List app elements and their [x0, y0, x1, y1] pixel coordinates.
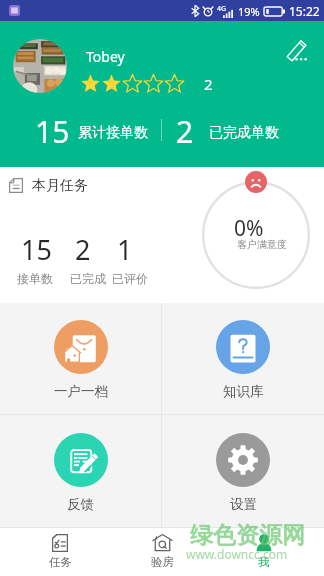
staticText: 累计接单数	[78, 124, 148, 142]
staticText: 绿色资源网	[190, 521, 305, 550]
staticText: 19%	[238, 4, 260, 19]
button[interactable]: Me	[213, 528, 315, 576]
staticText: 设置	[230, 496, 257, 513]
button[interactable]: Tasks	[9, 528, 111, 576]
staticText: 0%	[234, 214, 264, 243]
staticText: 2	[176, 111, 194, 152]
button[interactable]: 设置	[162, 415, 324, 527]
button[interactable]: 一户一档	[0, 303, 161, 414]
staticText: 反馈	[67, 496, 94, 513]
staticText: 知识库	[223, 383, 264, 400]
button[interactable]: 知识库	[162, 303, 324, 414]
staticText: 15	[35, 111, 70, 152]
staticText: 验房	[151, 555, 174, 569]
staticText: 2	[204, 74, 213, 94]
staticText: 已完成	[70, 271, 106, 286]
staticText: 15:22	[289, 3, 320, 19]
staticText: Tobey	[86, 47, 125, 66]
staticText: 本月任务	[32, 177, 88, 195]
staticText: 1	[117, 231, 133, 268]
staticText: 2	[75, 231, 91, 268]
button[interactable]: Edit profile	[283, 36, 311, 64]
staticText: 任务	[49, 555, 72, 569]
staticText: 接单数	[17, 271, 53, 286]
staticText: 4G	[217, 4, 227, 14]
staticText: www.downcc.com	[186, 546, 288, 562]
staticText: 我	[258, 555, 270, 569]
staticText: 一户一档	[54, 383, 108, 400]
button[interactable]: Inspect	[111, 528, 213, 576]
staticText: 已评价	[112, 271, 148, 286]
staticText: 已完成单数	[209, 124, 279, 142]
staticText: 15	[21, 231, 52, 268]
button[interactable]: 反馈	[0, 415, 161, 527]
staticText: 客户满意度	[237, 238, 287, 251]
